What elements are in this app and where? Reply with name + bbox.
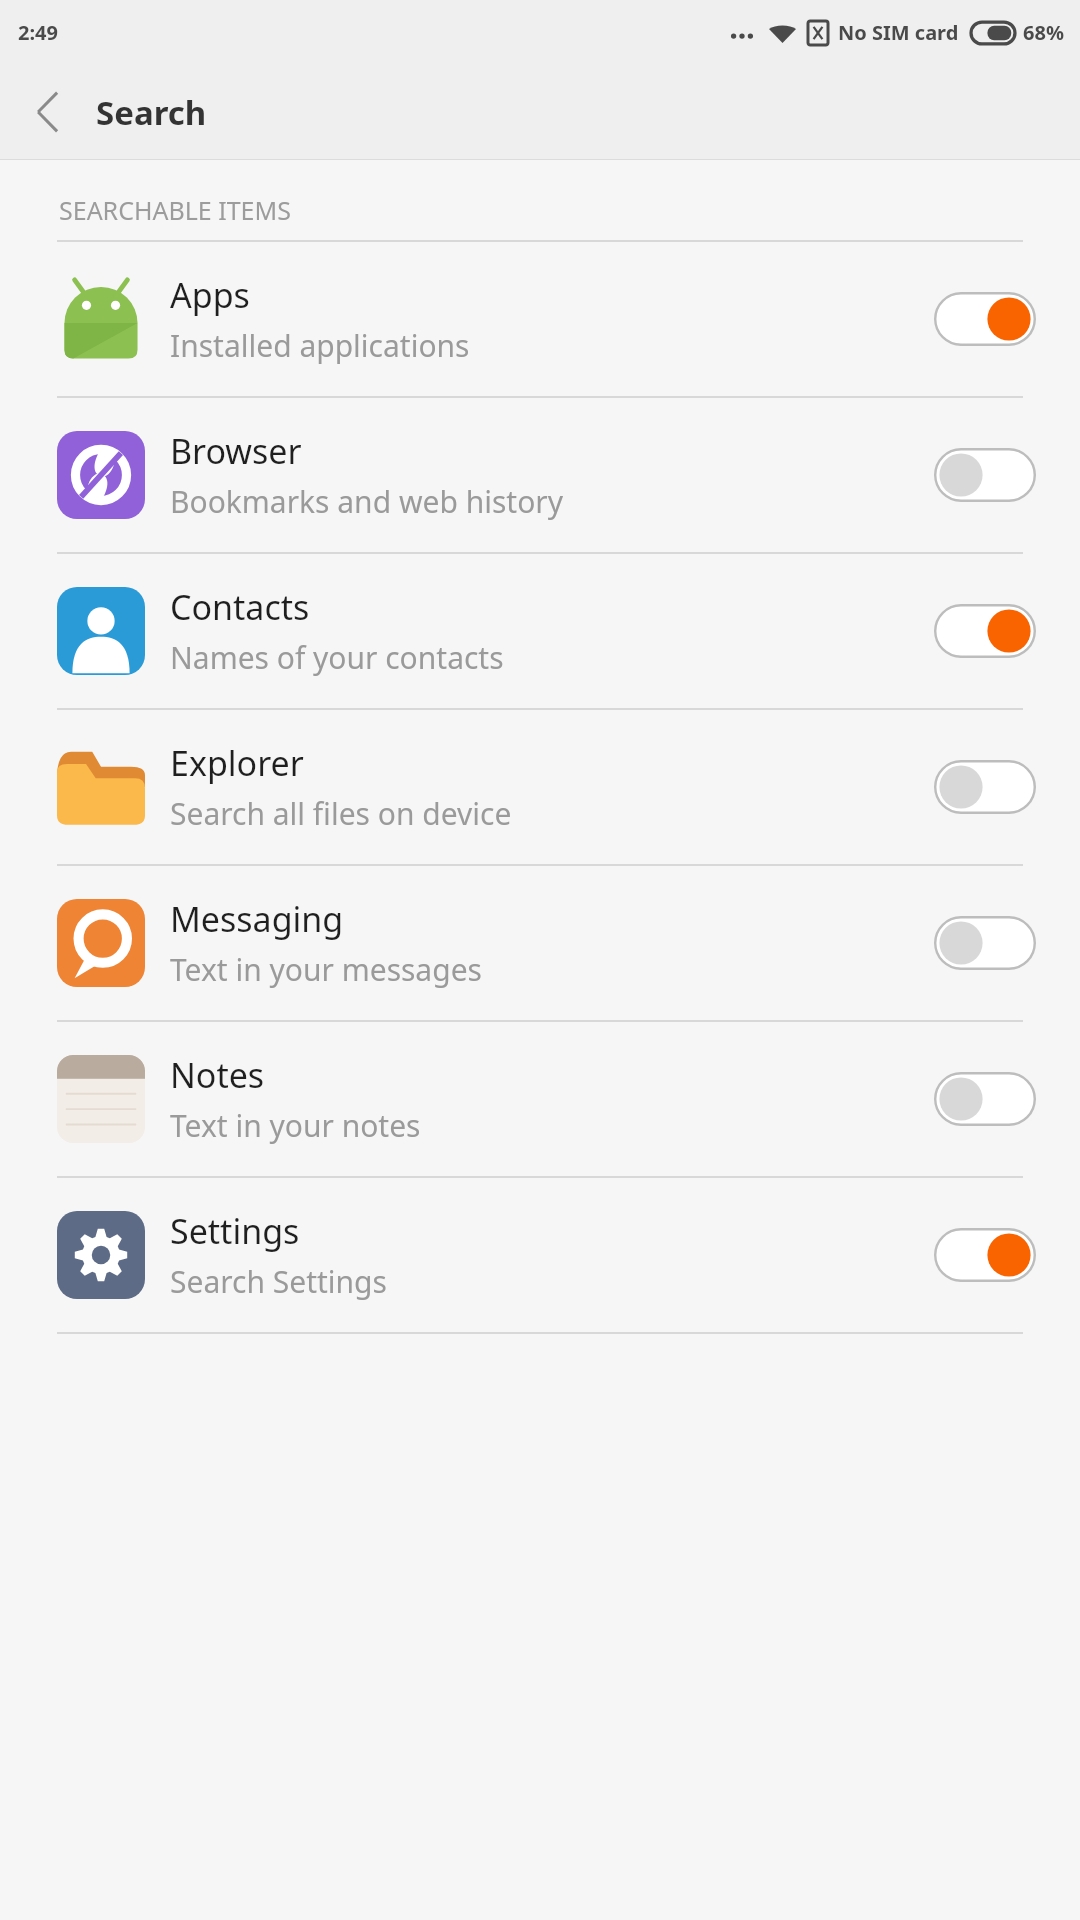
staticText: Text in your notes [170,1105,421,1146]
button[interactable]: Notes [0,1022,1080,1176]
button[interactable]: Browser [0,398,1080,552]
staticText: Installed applications [170,325,470,366]
button[interactable]: On [934,604,1036,658]
staticText: Search [96,90,207,135]
button[interactable]: Off [934,1072,1036,1126]
button[interactable]: On [934,1228,1036,1282]
staticText: Apps [170,272,250,318]
staticText: 2:49 [18,19,58,46]
staticText: Search all files on device [170,793,512,834]
button[interactable]: Back [0,64,96,160]
button[interactable]: On [934,292,1036,346]
button[interactable]: Apps [0,242,1080,396]
staticText: SEARCHABLE ITEMS [59,193,291,227]
staticText: Browser [170,428,302,474]
staticText: Contacts [170,584,310,630]
button[interactable]: Off [934,448,1036,502]
button[interactable]: Off [934,760,1036,814]
button[interactable]: Settings [0,1178,1080,1332]
staticText: Notes [170,1052,265,1098]
button[interactable]: Messaging [0,866,1080,1020]
staticText: Names of your contacts [170,637,504,678]
staticText: 68% [1023,19,1064,46]
staticText: Text in your messages [170,949,482,990]
button[interactable]: Explorer [0,710,1080,864]
button[interactable]: Contacts [0,554,1080,708]
button[interactable]: Off [934,916,1036,970]
staticText: No SIM card [838,19,959,46]
staticText: Messaging [170,896,344,942]
staticText: Bookmarks and web history [170,481,563,522]
staticText: Search Settings [170,1261,387,1302]
staticText: Settings [170,1208,300,1254]
staticText: Explorer [170,740,304,786]
